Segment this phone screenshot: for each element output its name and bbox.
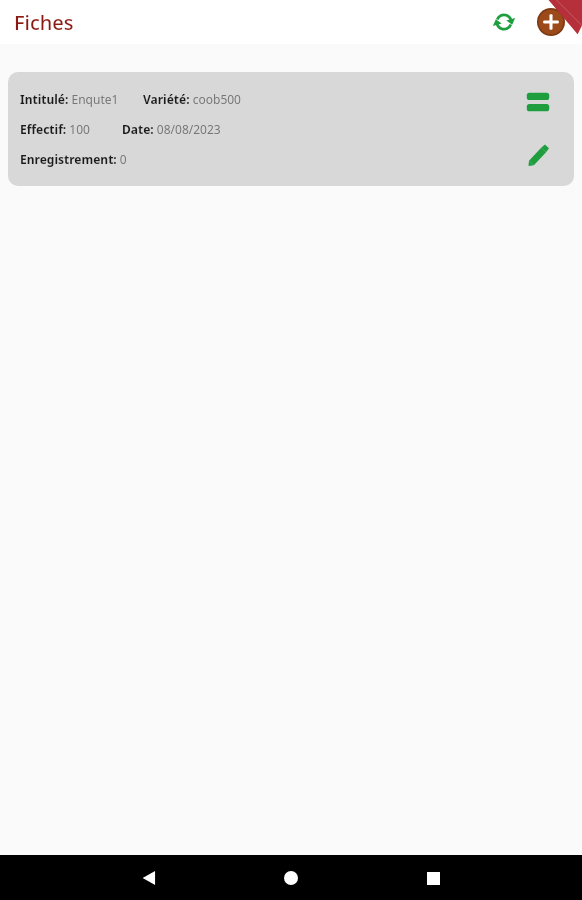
button[interactable]: Edit <box>518 136 558 176</box>
staticText: Intitulé: Enqute1 <box>20 91 119 107</box>
staticText: Effectif: 100 <box>20 121 90 137</box>
button[interactable]: Intitulé: Enqute1 <box>8 72 574 186</box>
staticText: Date: 08/08/2023 <box>122 121 221 137</box>
staticText: Enregistrement: 0 <box>20 151 127 167</box>
button[interactable]: Refresh <box>484 2 524 42</box>
button[interactable]: Recents <box>411 856 455 900</box>
button[interactable]: Back <box>127 856 171 900</box>
staticText: Fiches <box>14 9 74 36</box>
button[interactable]: List <box>518 82 558 122</box>
button[interactable]: Add <box>530 1 572 43</box>
button[interactable]: Home <box>269 856 313 900</box>
staticText: Variété: coob500 <box>143 91 241 107</box>
